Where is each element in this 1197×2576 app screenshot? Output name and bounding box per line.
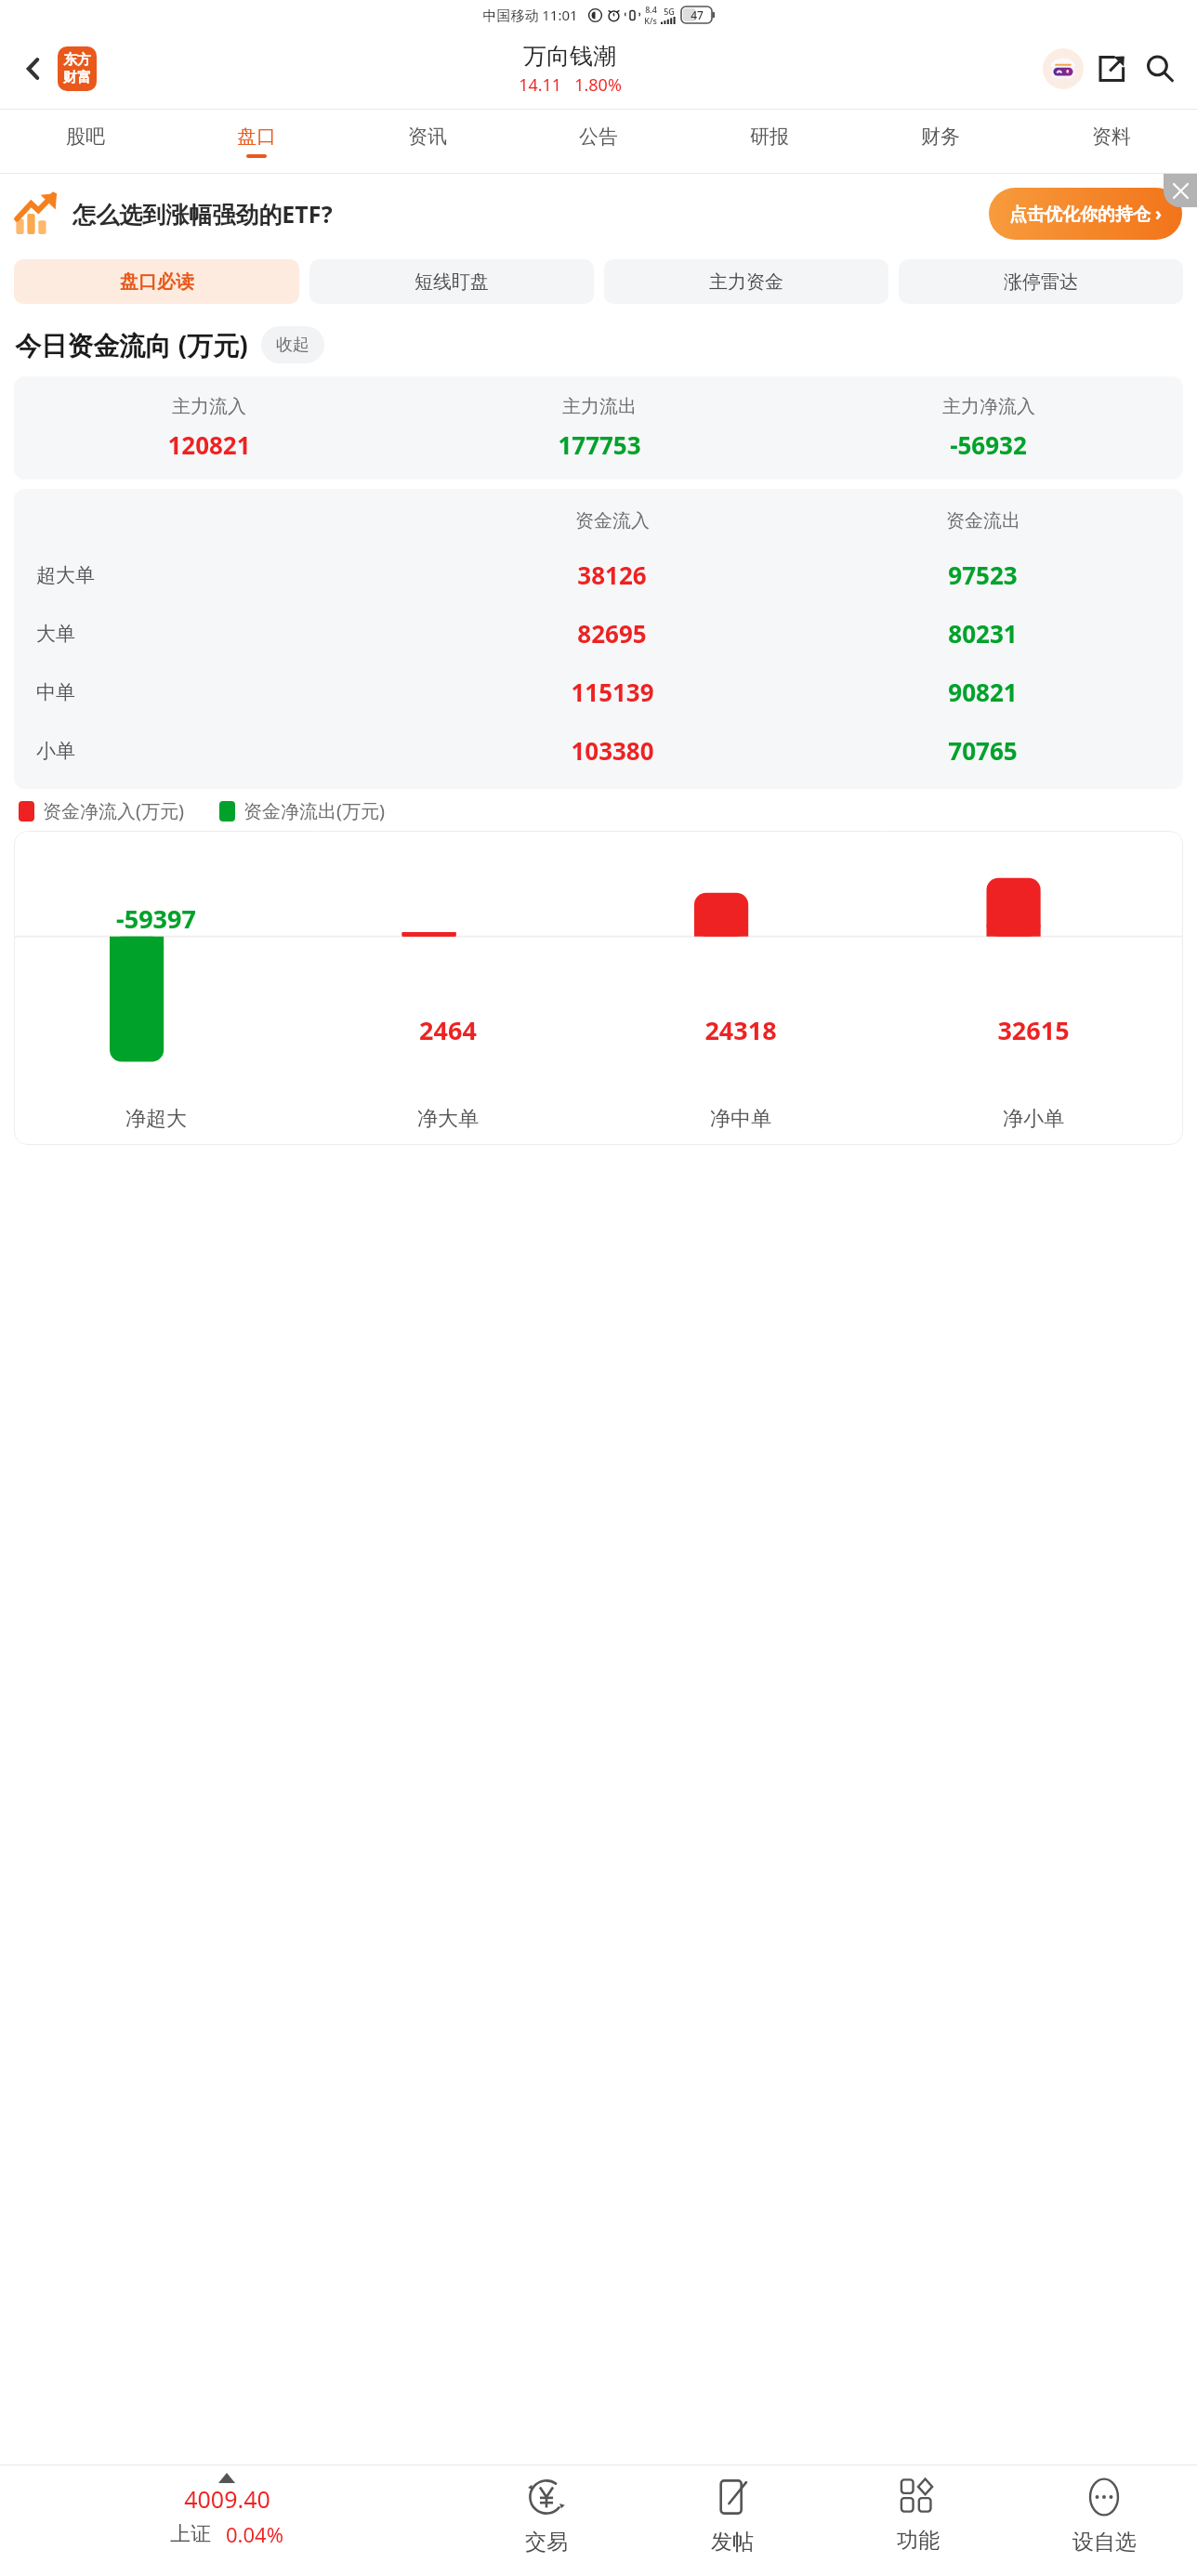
staticText: 82695 xyxy=(577,617,647,650)
staticText: 收起 xyxy=(276,335,309,356)
staticText: 中国移动 11:01 xyxy=(482,6,578,24)
button[interactable]: 点击优化你的持仓 › xyxy=(989,188,1182,240)
staticText: 32615 xyxy=(997,1013,1070,1047)
button[interactable]: 交易 xyxy=(454,2465,639,2556)
staticText: 小单 xyxy=(36,739,75,763)
staticText: 发帖 xyxy=(711,2529,754,2556)
button[interactable]: 资料 xyxy=(1026,110,1197,173)
staticText: 盘口必读 xyxy=(120,270,194,294)
staticText: 中单 xyxy=(36,680,75,704)
staticText: 主力流入 xyxy=(172,395,246,418)
staticText: 财富 xyxy=(63,69,91,86)
staticText: 净超大 xyxy=(125,1106,187,1132)
staticText: K/s xyxy=(644,15,657,26)
staticText: 上证 xyxy=(170,2521,211,2547)
staticText: 主力流出 xyxy=(562,395,637,418)
staticText: 4009.40 xyxy=(184,2483,270,2515)
staticText: 公告 xyxy=(579,125,618,149)
staticText: 今日资金流向 (万元) xyxy=(15,327,248,362)
staticText: 97523 xyxy=(948,559,1018,591)
button[interactable]: 收起 xyxy=(261,326,324,363)
staticText: 资金净流入(万元) xyxy=(43,798,184,823)
button[interactable]: 东方财富 xyxy=(58,46,97,91)
staticText: 资金流出 xyxy=(946,509,1020,532)
staticText: 38126 xyxy=(577,559,647,591)
button[interactable]: 盘口 xyxy=(171,110,342,173)
staticText: 资讯 xyxy=(408,125,447,149)
staticText: 47 xyxy=(691,7,704,22)
staticText: 短线盯盘 xyxy=(414,270,489,294)
staticText: 财务 xyxy=(921,125,960,149)
staticText: 2464 xyxy=(419,1013,477,1047)
button[interactable]: Back xyxy=(13,48,54,89)
staticText: 东方 xyxy=(63,51,91,69)
staticText: 净大单 xyxy=(417,1106,479,1132)
button[interactable]: Search xyxy=(1136,45,1184,93)
staticText: 大单 xyxy=(36,622,75,646)
staticText: 8.4 xyxy=(645,4,657,15)
button[interactable]: 功能 xyxy=(825,2465,1011,2554)
staticText: 120821 xyxy=(167,428,251,461)
staticText: 80231 xyxy=(948,617,1018,650)
button[interactable]: Share xyxy=(1087,45,1136,93)
staticText: 资金流入 xyxy=(575,509,650,532)
staticText: 点击优化你的持仓 › xyxy=(1009,202,1162,226)
button[interactable]: 4009.40 xyxy=(0,2465,454,2548)
staticText: 盘口 xyxy=(237,125,276,149)
staticText: 净中单 xyxy=(710,1106,771,1132)
staticText: 交易 xyxy=(525,2529,568,2556)
button[interactable]: 主力资金 xyxy=(604,259,888,304)
staticText: 研报 xyxy=(750,125,789,149)
button[interactable]: 研报 xyxy=(684,110,855,173)
button[interactable]: 发帖 xyxy=(639,2465,825,2556)
staticText: 超大单 xyxy=(36,563,95,587)
button[interactable]: 财务 xyxy=(855,110,1026,173)
staticText: 股吧 xyxy=(66,125,105,149)
staticText: 净小单 xyxy=(1003,1106,1064,1132)
button[interactable]: 公告 xyxy=(513,110,684,173)
button[interactable]: Close ad xyxy=(1164,174,1197,207)
staticText: 资料 xyxy=(1092,125,1131,149)
staticText: 14.11 1.80% xyxy=(519,73,622,97)
staticText: 主力资金 xyxy=(709,270,783,294)
button[interactable]: AI assistant xyxy=(1039,45,1087,93)
staticText: 177753 xyxy=(558,428,641,461)
button[interactable]: 设自选 xyxy=(1011,2465,1197,2556)
staticText: -56932 xyxy=(950,428,1027,461)
staticText: 怎么选到涨幅强劲的ETF? xyxy=(72,198,333,230)
staticText: 103380 xyxy=(571,734,654,767)
staticText: 设自选 xyxy=(1072,2529,1137,2556)
button[interactable]: 股吧 xyxy=(0,110,171,173)
staticText: 涨停雷达 xyxy=(1004,270,1078,294)
staticText: 资金净流出(万元) xyxy=(243,798,385,823)
staticText: 万向钱潮 xyxy=(523,42,616,71)
button[interactable]: 涨停雷达 xyxy=(899,259,1183,304)
staticText: 24318 xyxy=(704,1013,777,1047)
staticText: 115139 xyxy=(571,676,654,708)
staticText: 90821 xyxy=(948,676,1018,708)
staticText: -59397 xyxy=(116,901,196,936)
staticText: 0.04% xyxy=(226,2520,283,2548)
button[interactable]: 资讯 xyxy=(342,110,513,173)
button[interactable]: 盘口必读 xyxy=(14,259,299,304)
staticText: 5G xyxy=(664,6,675,17)
staticText: 70765 xyxy=(948,734,1018,767)
button[interactable]: 怎么选到涨幅强劲的ETF? xyxy=(15,174,1182,254)
button[interactable]: 短线盯盘 xyxy=(309,259,594,304)
staticText: 主力净流入 xyxy=(942,395,1035,418)
staticText: 功能 xyxy=(897,2527,940,2554)
